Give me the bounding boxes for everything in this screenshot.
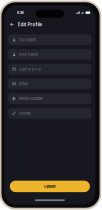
button[interactable]: Date of Birth [8,64,91,75]
button[interactable]: Full Name [8,34,91,45]
staticText: 6:39 [16,10,23,15]
staticText: Nick Name [19,52,38,57]
staticText: Edit Profile [17,21,42,27]
staticText: Full Name [19,37,36,42]
staticText: Gender [19,111,31,116]
button[interactable]: Nick Name [8,49,91,60]
staticText: Phone Number [19,96,43,101]
button[interactable]: Gender [8,108,91,119]
button[interactable]: Phone Number [8,93,91,104]
staticText: Update [44,184,56,189]
staticText: Email [19,81,28,86]
staticText: Date of Birth [19,67,41,71]
button[interactable]: Back [8,21,16,28]
button[interactable]: Email [8,78,91,89]
button[interactable]: Update [10,181,90,192]
